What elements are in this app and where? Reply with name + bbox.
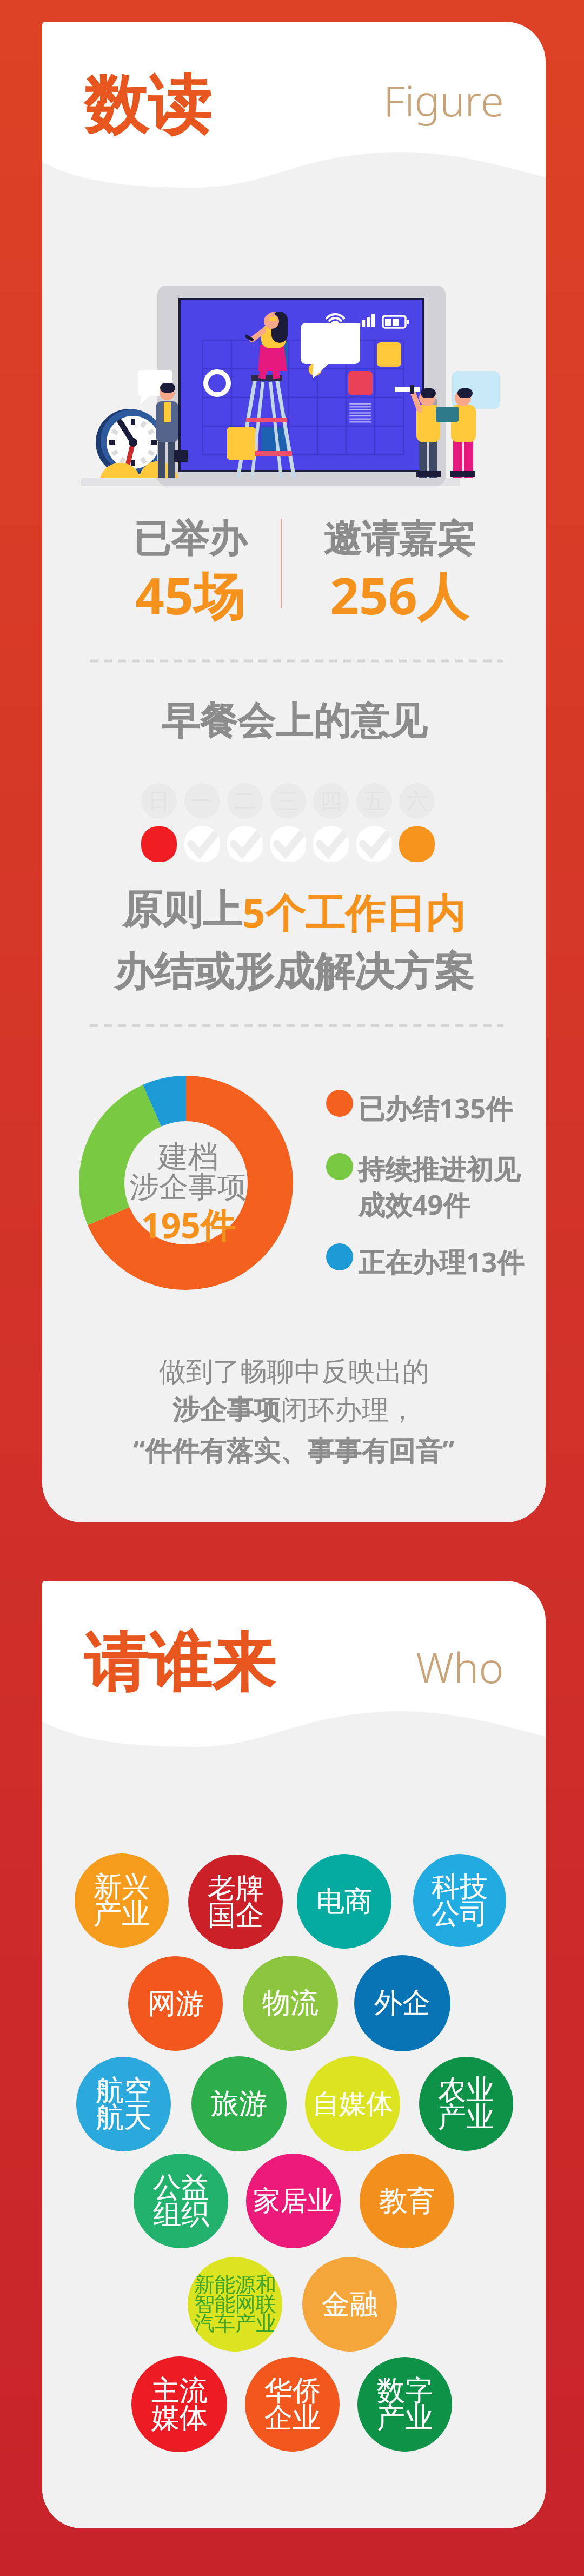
staticText: 已办结135件 (358, 1090, 513, 1127)
staticText: 航空 航天 (96, 2073, 152, 2136)
staticText: 5个工作日内 (242, 885, 466, 939)
staticText: 新兴 产业 (94, 1869, 150, 1932)
button[interactable]: 一 (184, 826, 220, 862)
staticText: 早餐会上的意见 (162, 698, 427, 745)
staticText: 旅游 (211, 2086, 267, 2122)
button[interactable]: 日 (141, 826, 177, 862)
button[interactable]: 六 (399, 826, 435, 862)
staticText: 农业 产业 (438, 2072, 494, 2135)
staticText: 正在办理13件 (358, 1243, 525, 1280)
staticText: 网游 (148, 1986, 204, 2022)
staticText: 涉企事项 (130, 1169, 247, 1206)
staticText: 45场 (135, 560, 244, 630)
button[interactable]: 电商 (297, 1854, 391, 1949)
staticText: 物流 (262, 1985, 318, 2021)
button[interactable]: 公益 组织 (134, 2154, 228, 2248)
staticText: 请谁来 (84, 1623, 275, 1704)
staticText: 主流 媒体 (151, 2373, 208, 2436)
button[interactable]: 网游 (128, 1956, 223, 2051)
button[interactable]: 家居业 (246, 2154, 341, 2248)
staticText: 做到了畅聊中反映出的 (159, 1355, 429, 1389)
staticText: 195件 (141, 1201, 235, 1248)
staticText: 涉企事项 (172, 1393, 281, 1427)
button[interactable]: 物流 (243, 1956, 338, 2051)
staticText: 电商 (316, 1884, 373, 1919)
staticText: 新能源和 智能网联 汽车产业 (194, 2272, 276, 2337)
button[interactable]: 五 (356, 826, 392, 862)
button[interactable]: 数字 产业 (357, 2357, 452, 2452)
button[interactable]: 金融 (302, 2257, 397, 2352)
button[interactable]: 农业 产业 (419, 2057, 513, 2151)
staticText: 256人 (330, 560, 468, 630)
staticText: 邀请嘉宾 (323, 515, 475, 563)
button[interactable]: 航空 航天 (76, 2057, 171, 2151)
button[interactable]: 四 (313, 826, 349, 862)
staticText: 外企 (374, 1985, 430, 2021)
staticText: 家居业 (253, 2184, 334, 2218)
staticText: 原则上 (122, 885, 242, 935)
button[interactable]: 新能源和 智能网联 汽车产业 (188, 2257, 282, 2352)
staticText: 持续推进初见 成效49件 (358, 1153, 520, 1223)
button[interactable]: 老牌 国企 (188, 1855, 283, 1949)
staticText: 数字 产业 (377, 2373, 433, 2436)
button[interactable]: 二 (227, 826, 263, 862)
staticText: 自媒体 (312, 2087, 393, 2121)
staticText: Who (416, 1638, 504, 1696)
staticText: 教育 (379, 2183, 435, 2219)
staticText: 建档 (158, 1138, 218, 1176)
button[interactable]: 自媒体 (305, 2056, 400, 2151)
staticText: 金融 (322, 2287, 378, 2322)
staticText: 华侨 企业 (264, 2373, 321, 2436)
button[interactable]: 主流 媒体 (131, 2356, 227, 2452)
staticText: Figure (383, 71, 504, 129)
staticText: “件件有落实、事事有回音” (133, 1432, 455, 1468)
button[interactable]: 新兴 产业 (75, 1853, 169, 1948)
staticText: 老牌 国企 (208, 1871, 264, 1933)
button[interactable]: 旅游 (191, 2056, 287, 2151)
staticText: 科技 公司 (432, 1869, 488, 1932)
button[interactable]: 三 (270, 826, 306, 862)
button[interactable]: 科技 公司 (413, 1854, 506, 1947)
button[interactable]: 华侨 企业 (245, 2357, 340, 2452)
staticText: 数读 (84, 65, 211, 146)
staticText: 公益 组织 (153, 2170, 209, 2233)
staticText: 办结或形成解决方案 (114, 947, 474, 997)
staticText: 已举办 (133, 515, 247, 563)
staticText: 闭环办理， (281, 1393, 416, 1427)
button[interactable]: 外企 (354, 1955, 450, 2051)
button[interactable]: 教育 (360, 2154, 454, 2248)
